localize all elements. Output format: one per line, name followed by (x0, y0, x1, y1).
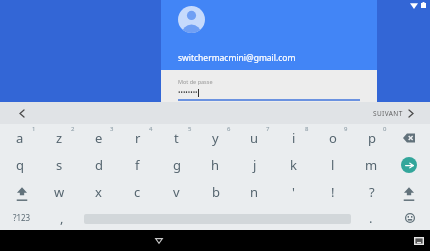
staticText: 6 (227, 125, 231, 133)
staticText: 3 (110, 125, 114, 133)
button[interactable]: x (79, 178, 118, 205)
button[interactable]: shift (0, 178, 40, 205)
staticText: o (329, 129, 337, 147)
staticText: 8 (305, 125, 309, 133)
staticText: r (135, 129, 141, 147)
button[interactable]: a (0, 124, 40, 151)
staticText: s (56, 156, 63, 174)
button[interactable]: j (235, 151, 274, 178)
staticText: j (253, 156, 257, 174)
staticText: n (250, 183, 259, 201)
button[interactable]: n (235, 178, 274, 205)
staticText: •••••••• (178, 88, 198, 97)
button[interactable]: i (274, 124, 313, 151)
staticText: 9 (344, 125, 348, 133)
button[interactable]: y (196, 124, 235, 151)
staticText: , (60, 209, 64, 227)
staticText: ' (292, 183, 295, 201)
staticText: q (16, 156, 24, 174)
staticText: w (54, 183, 65, 201)
button[interactable]: f (118, 151, 157, 178)
staticText: p (368, 129, 376, 147)
button[interactable]: l (313, 151, 352, 178)
staticText: ?123 (13, 212, 31, 223)
staticText: 1 (32, 125, 36, 133)
button[interactable]: q (0, 151, 40, 178)
staticText: k (290, 156, 297, 174)
button[interactable]: b (196, 178, 235, 205)
staticText: u (250, 129, 259, 147)
button[interactable]: u (235, 124, 274, 151)
button[interactable]: d (79, 151, 118, 178)
staticText: i (292, 129, 296, 147)
button[interactable]: h (196, 151, 235, 178)
staticText: f (135, 156, 140, 174)
staticText: ? (369, 183, 375, 201)
staticText: SUIVANT (373, 109, 403, 118)
staticText: v (173, 183, 180, 201)
button[interactable]: t (157, 124, 196, 151)
button[interactable]: Switch keyboard (406, 230, 430, 251)
staticText: g (173, 156, 181, 174)
button[interactable]: ' (274, 178, 313, 205)
button[interactable]: backspace (391, 124, 430, 151)
button[interactable]: p (352, 124, 391, 151)
button[interactable]: enter (391, 151, 430, 178)
button[interactable]: s (40, 151, 79, 178)
button[interactable]: ? (352, 178, 391, 205)
staticText: switchermacmini@gmail.com (178, 52, 296, 64)
staticText: 7 (266, 125, 270, 133)
staticText: Mot de passe (178, 78, 213, 85)
staticText: e (95, 129, 103, 147)
button[interactable]: o (313, 124, 352, 151)
button[interactable]: e (79, 124, 118, 151)
button[interactable]: Emoji (398, 205, 422, 230)
button[interactable]: g (157, 151, 196, 178)
staticText: z (56, 129, 63, 147)
button[interactable]: . (357, 205, 385, 230)
button[interactable]: SUIVANT (373, 109, 413, 118)
button[interactable]: r (118, 124, 157, 151)
staticText: 2 (71, 125, 75, 133)
staticText: y (212, 129, 219, 147)
staticText: c (134, 183, 141, 201)
staticText: d (95, 156, 103, 174)
button[interactable]: , (48, 205, 76, 230)
staticText: l (331, 156, 335, 174)
staticText: 0 (383, 125, 387, 133)
button[interactable]: k (274, 151, 313, 178)
staticText: 5 (188, 125, 192, 133)
button[interactable]: z (40, 124, 79, 151)
button[interactable]: c (118, 178, 157, 205)
staticText: ! (331, 183, 335, 201)
button[interactable]: w (40, 178, 79, 205)
staticText: . (369, 209, 373, 227)
button[interactable]: shift (391, 178, 430, 205)
button[interactable]: m (352, 151, 391, 178)
button[interactable]: ?123 (8, 205, 36, 230)
staticText: x (95, 183, 102, 201)
staticText: m (365, 156, 378, 174)
button[interactable]: v (157, 178, 196, 205)
staticText: a (16, 129, 24, 147)
staticText: t (174, 129, 179, 147)
button[interactable]: Previous suggestions (14, 105, 30, 121)
button[interactable]: Back (145, 230, 173, 251)
button[interactable]: ! (313, 178, 352, 205)
staticText: b (212, 183, 220, 201)
staticText: h (211, 156, 220, 174)
staticText: 4 (149, 125, 153, 133)
